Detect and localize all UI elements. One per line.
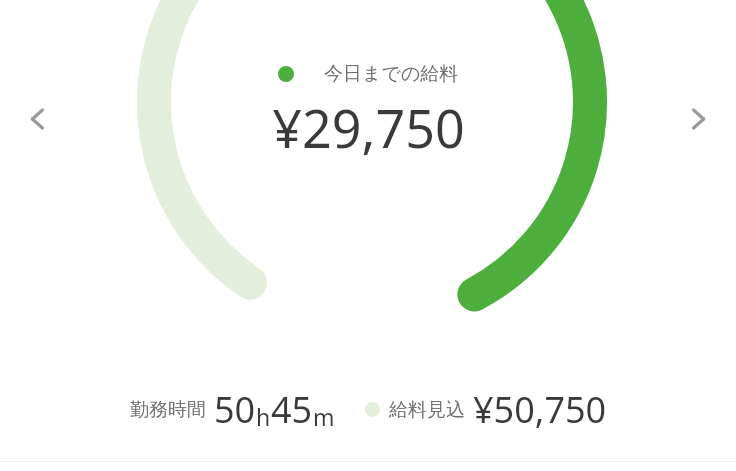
staticText: m	[313, 401, 335, 432]
staticText: ¥50,750	[473, 385, 607, 434]
staticText: h	[256, 401, 271, 432]
staticText: 50	[214, 385, 256, 434]
staticText: ¥29,750	[272, 92, 465, 163]
button[interactable]: 前へ	[6, 87, 70, 151]
button[interactable]: 次へ	[666, 87, 730, 151]
staticText: 勤務時間	[130, 398, 206, 422]
button[interactable]: 勤務時間	[12, 385, 724, 434]
staticText: 今日までの給料	[324, 62, 459, 86]
staticText: 45	[271, 385, 313, 434]
staticText: 給料見込	[389, 398, 465, 422]
